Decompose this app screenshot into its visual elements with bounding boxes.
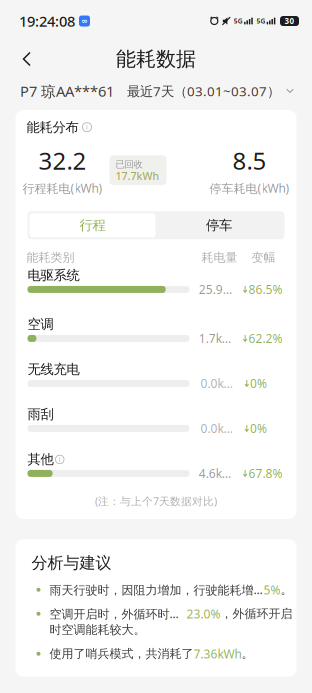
button[interactable]: Back	[10, 44, 44, 74]
staticText: 行程	[79, 217, 105, 233]
staticText: (注：与上个7天数据对比)	[95, 494, 217, 508]
staticText: 电驱系统	[27, 267, 79, 284]
button[interactable]: 行程	[29, 213, 155, 237]
staticText: 5G	[256, 17, 265, 25]
staticText: 雨天行驶时，因阻力增加，行驶能耗增加约	[49, 582, 263, 598]
staticText: 32.2	[38, 144, 86, 176]
staticText: P7 琼AA***61	[20, 81, 114, 101]
staticText: 17.7kWh	[115, 169, 159, 183]
staticText: 时空调能耗较大。	[49, 622, 145, 637]
staticText: 无线充电	[27, 361, 79, 378]
staticText: 23.0%	[186, 606, 220, 622]
staticText: 变幅	[251, 250, 275, 265]
staticText: 62.2%	[248, 330, 282, 346]
staticText: 。	[280, 582, 292, 597]
button[interactable]: 停车	[155, 213, 282, 237]
staticText: 空调开启时，外循环时间占比为	[49, 606, 186, 622]
staticText: 。	[241, 646, 253, 661]
staticText: 0.0kWh	[200, 420, 238, 436]
staticText: 耗电量	[201, 250, 237, 265]
staticText: 7.36kWh	[193, 646, 241, 662]
staticText: 使用了哨兵模式，共消耗了	[49, 646, 193, 661]
staticText: 能耗分布	[26, 119, 78, 135]
staticText: 5%	[263, 582, 280, 598]
staticText: 25.9kWh	[199, 281, 237, 297]
staticText: ∞	[81, 16, 88, 26]
staticText: 最近7天（03.01~03.07）	[127, 82, 280, 100]
staticText: 雨刮	[27, 406, 53, 423]
staticText: i	[59, 455, 61, 464]
staticText: 86.5%	[248, 281, 282, 297]
staticText: 能耗类别	[26, 250, 74, 265]
staticText: 行程耗电(kWh)	[22, 180, 102, 196]
staticText: 1.7kWh	[199, 330, 237, 346]
staticText: 已回收	[115, 158, 142, 170]
staticText: 0%	[250, 375, 267, 391]
button[interactable]: P7 琼AA***61	[20, 76, 114, 106]
staticText: 8.5	[232, 144, 266, 176]
staticText: 0%	[250, 420, 267, 436]
staticText: 空调	[27, 316, 53, 333]
staticText: ，外循环开启	[220, 606, 292, 621]
staticText: 30	[284, 16, 294, 26]
staticText: 其他	[27, 451, 53, 468]
staticText: 停车耗电(kWh)	[209, 180, 289, 196]
staticText: 4.6kWh	[199, 465, 237, 481]
staticText: 0.0kWh	[200, 375, 238, 391]
staticText: 67.8%	[248, 465, 282, 481]
staticText: i	[86, 123, 88, 132]
staticText: 能耗数据	[116, 47, 196, 71]
staticText: 19:24:08	[19, 11, 75, 31]
staticText: 停车	[206, 217, 232, 233]
button[interactable]: 最近7天（03.01~03.07）	[127, 77, 294, 105]
staticText: 5G	[234, 17, 243, 25]
staticText: 分析与建议	[31, 553, 111, 573]
